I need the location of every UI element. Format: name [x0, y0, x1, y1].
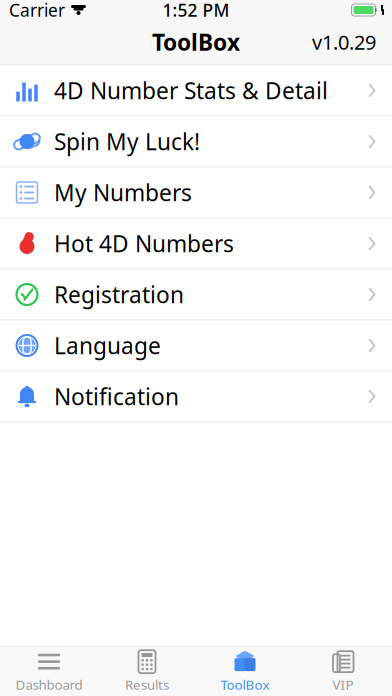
button[interactable]: Results: [98, 647, 196, 696]
staticText: ToolBox: [152, 27, 240, 57]
button[interactable]: Hot 4D Numbers: [0, 218, 392, 269]
staticText: Dashboard: [15, 676, 82, 693]
staticText: Notification: [54, 381, 179, 411]
button[interactable]: Notification: [0, 371, 392, 422]
button[interactable]: v1.0.29: [304, 23, 384, 61]
button[interactable]: Registration: [0, 269, 392, 320]
staticText: v1.0.29: [312, 29, 376, 55]
button[interactable]: Language: [0, 320, 392, 371]
staticText: Carrier: [9, 0, 65, 21]
staticText: Results: [125, 676, 169, 693]
button[interactable]: VIP: [294, 647, 392, 696]
button[interactable]: 4D Number Stats & Detail: [0, 65, 392, 116]
staticText: ToolBox: [220, 676, 269, 693]
staticText: Registration: [54, 279, 184, 309]
button[interactable]: ToolBox: [196, 647, 294, 696]
staticText: Hot 4D Numbers: [54, 228, 234, 258]
button[interactable]: Dashboard: [0, 647, 98, 696]
staticText: 4D Number Stats & Detail: [54, 75, 328, 105]
button[interactable]: Spin My Luck!: [0, 116, 392, 167]
staticText: My Numbers: [54, 177, 192, 207]
staticText: VIP: [332, 676, 353, 693]
button[interactable]: My Numbers: [0, 167, 392, 218]
staticText: Spin My Luck!: [54, 126, 200, 156]
staticText: Language: [54, 330, 161, 360]
staticText: 1:52 PM: [162, 0, 229, 21]
